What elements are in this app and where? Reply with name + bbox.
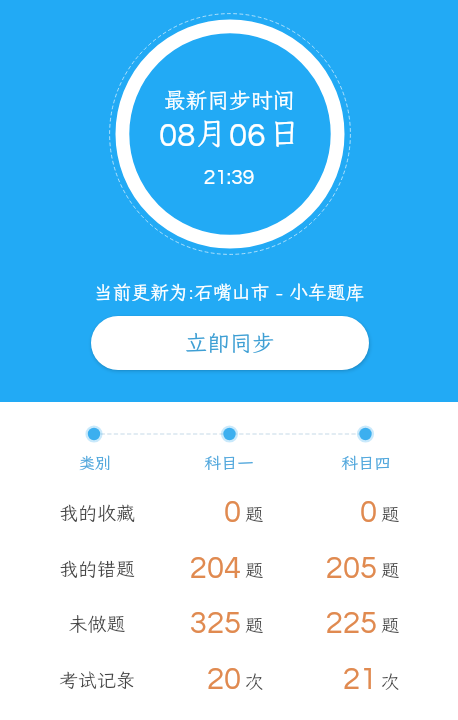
button[interactable]: 立即同步 — [91, 316, 369, 370]
staticText: 题 — [245, 502, 263, 526]
staticText: 类别 — [0, 452, 195, 474]
staticText: 题 — [381, 558, 399, 582]
staticText: 月 — [196, 112, 227, 153]
staticText: 题 — [381, 613, 399, 637]
staticText: 0 — [121, 497, 241, 529]
staticText: 当前更新为:石嘴山市 - 小车题库 — [0, 280, 458, 305]
staticText: 题 — [245, 613, 263, 637]
staticText: 立即同步 — [185, 328, 275, 358]
staticText: 题 — [381, 502, 399, 526]
staticText: 最新同步时间 — [0, 86, 458, 115]
staticText: 0 — [257, 497, 377, 529]
staticText: 225 — [257, 608, 377, 640]
staticText: 我的收藏 — [17, 500, 177, 525]
staticText: 我的错题 — [17, 556, 177, 581]
staticText: 日 — [269, 112, 300, 153]
staticText: 21:39 — [0, 167, 458, 189]
staticText: 科目四 — [266, 452, 458, 474]
staticText: 21 — [257, 664, 377, 696]
staticText: 科目一 — [129, 452, 329, 474]
staticText: 次 — [245, 669, 263, 693]
staticText: 08 — [159, 119, 196, 153]
staticText: 未做题 — [17, 611, 177, 636]
staticText: 考试记录 — [17, 667, 177, 692]
staticText: 204 — [121, 553, 241, 585]
staticText: 20 — [121, 664, 241, 696]
staticText: 次 — [381, 669, 399, 693]
staticText: 06 — [229, 119, 266, 153]
staticText: 题 — [245, 558, 263, 582]
staticText: 325 — [121, 608, 241, 640]
staticText: 205 — [257, 553, 377, 585]
